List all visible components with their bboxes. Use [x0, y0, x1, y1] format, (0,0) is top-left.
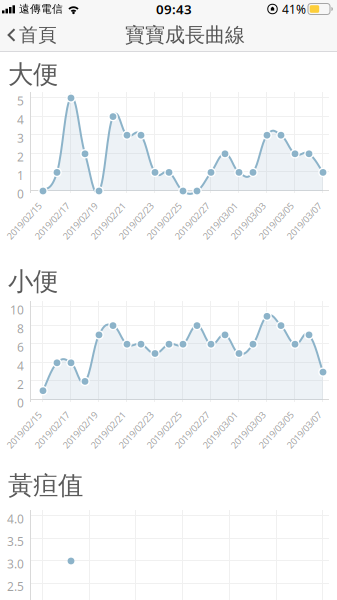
- staticText: 6: [17, 339, 24, 355]
- staticText: 2019/03/03: [225, 215, 271, 227]
- staticText: 2019/02/23: [113, 424, 159, 436]
- staticText: 首頁: [19, 23, 57, 46]
- staticText: 0: [17, 186, 24, 202]
- staticText: 大便: [8, 59, 58, 90]
- staticText: 2019/03/03: [225, 424, 271, 436]
- staticText: 2019/02/17: [29, 424, 75, 436]
- staticText: 2019/02/21: [85, 215, 131, 227]
- staticText: 4: [17, 112, 24, 127]
- staticText: 1: [17, 167, 24, 183]
- staticText: 2019/03/05: [253, 424, 299, 436]
- staticText: 2019/02/21: [85, 424, 131, 436]
- staticText: 2019/02/25: [141, 424, 187, 436]
- staticText: 2019/02/17: [29, 215, 75, 227]
- staticText: 3.0: [7, 556, 24, 572]
- staticText: 寶寶成長曲線: [125, 23, 245, 47]
- staticText: 2019/02/27: [169, 424, 215, 436]
- staticText: 小便: [8, 266, 58, 297]
- staticText: 2019/02/15: [1, 424, 47, 436]
- staticText: 2019/03/01: [197, 424, 243, 436]
- staticText: 遠傳電信: [19, 2, 63, 15]
- staticText: 2019/02/27: [169, 215, 215, 227]
- staticText: 8: [17, 321, 24, 336]
- staticText: 3: [17, 130, 24, 146]
- staticText: 2019/02/15: [1, 215, 47, 227]
- button[interactable]: 首頁: [0, 17, 57, 52]
- staticText: 2019/03/01: [197, 215, 243, 227]
- staticText: 3.5: [7, 533, 24, 549]
- staticText: 41%: [282, 1, 306, 17]
- staticText: 0: [17, 395, 24, 411]
- staticText: 4.0: [7, 511, 24, 527]
- staticText: 2019/03/07: [281, 215, 327, 227]
- staticText: 4: [17, 358, 24, 374]
- staticText: 2: [17, 376, 24, 392]
- staticText: 2019/02/23: [113, 215, 159, 227]
- staticText: 2019/03/05: [253, 215, 299, 227]
- staticText: 2019/03/07: [281, 424, 327, 436]
- staticText: 2019/02/25: [141, 215, 187, 227]
- staticText: 2019/02/19: [57, 215, 103, 227]
- staticText: 2019/02/19: [57, 424, 103, 436]
- staticText: 2.5: [7, 578, 24, 594]
- staticText: 2: [17, 149, 24, 165]
- staticText: 10: [10, 302, 24, 318]
- staticText: 09:43: [156, 0, 192, 18]
- staticText: 黃疸值: [8, 470, 83, 501]
- staticText: 5: [17, 93, 24, 109]
